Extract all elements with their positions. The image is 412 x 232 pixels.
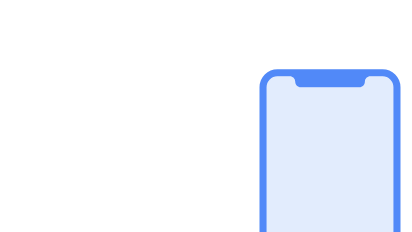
other: Illustration of a smartphone [0,0,412,232]
